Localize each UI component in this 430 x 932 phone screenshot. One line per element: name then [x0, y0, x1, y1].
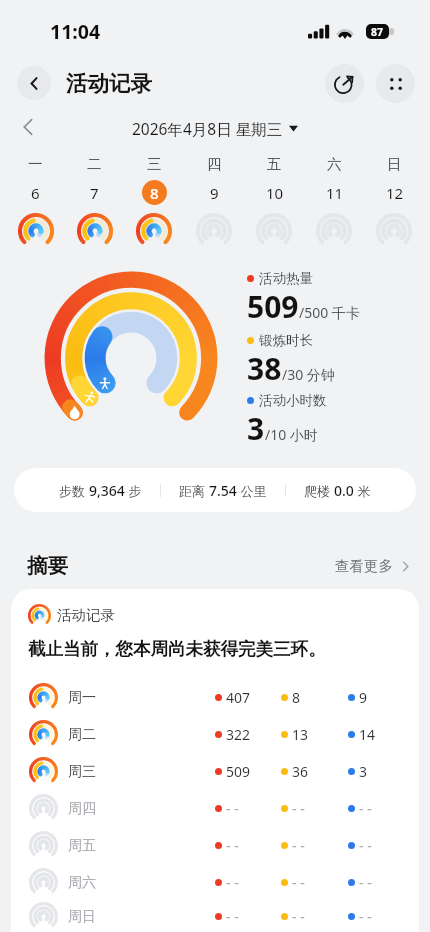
staticText: 公里	[237, 482, 267, 500]
button[interactable]: 周日	[11, 901, 419, 932]
staticText: 9,364	[89, 481, 125, 500]
button[interactable]: Share	[325, 64, 364, 103]
staticText: 锻炼时长	[259, 332, 313, 349]
staticText: 活动记录	[66, 70, 152, 97]
staticText: 407	[226, 688, 251, 707]
staticText: - -	[292, 873, 305, 892]
staticText: 周五	[68, 837, 96, 855]
staticText: 周一	[68, 689, 96, 707]
staticText: 活动记录	[57, 606, 115, 624]
button[interactable]: 一	[6, 155, 65, 249]
button[interactable]: 查看更多	[335, 557, 412, 575]
staticText: 截止当前，您本周尚未获得完美三环。	[28, 638, 326, 660]
button[interactable]: More options	[376, 64, 415, 103]
staticText: 0.0	[334, 481, 354, 500]
staticText: 周四	[68, 800, 96, 818]
button[interactable]: 周四	[11, 790, 419, 827]
staticText: 二	[87, 155, 102, 173]
staticText: - -	[292, 836, 305, 855]
staticText: 活动小时数	[259, 392, 327, 409]
button[interactable]: 三	[124, 155, 184, 249]
staticText: - -	[292, 799, 305, 818]
staticText: 周日	[68, 908, 96, 926]
staticText: 摘要	[27, 553, 68, 578]
staticText: /500 千卡	[299, 303, 360, 322]
staticText: 11	[326, 183, 344, 203]
button[interactable]: 2026年4月8日 星期三	[132, 118, 298, 139]
button[interactable]: 四	[184, 155, 244, 249]
staticText: 322	[226, 725, 251, 744]
button[interactable]: 周三	[11, 753, 419, 790]
staticText: 六	[327, 155, 342, 173]
staticText: 11:04	[50, 18, 101, 45]
staticText: 查看更多	[335, 557, 393, 575]
button[interactable]: Previous week	[14, 113, 42, 141]
staticText: 周三	[68, 763, 96, 781]
button[interactable]: 步数	[14, 468, 416, 512]
staticText: 8	[150, 183, 159, 203]
staticText: 7	[90, 183, 99, 203]
button[interactable]: 六	[304, 155, 364, 249]
staticText: - -	[359, 799, 372, 818]
staticText: 12	[386, 183, 404, 203]
staticText: 6	[31, 183, 40, 203]
staticText: 36	[292, 762, 309, 781]
staticText: - -	[226, 836, 239, 855]
staticText: /10 小时	[265, 425, 318, 444]
staticText: 10	[266, 183, 284, 203]
button[interactable]: 周五	[11, 827, 419, 864]
staticText: 2026年4月8日 星期三	[132, 118, 283, 139]
staticText: - -	[359, 907, 372, 926]
staticText: 38	[247, 348, 282, 389]
button[interactable]: Back	[17, 66, 51, 100]
staticText: 509	[247, 286, 299, 327]
staticText: 9	[210, 183, 219, 203]
button[interactable]: 周一	[11, 679, 419, 716]
staticText: 爬楼	[304, 482, 334, 500]
staticText: 步数	[59, 482, 89, 500]
staticText: 日	[387, 155, 402, 173]
staticText: 7.54	[209, 481, 237, 500]
button[interactable]: 二	[65, 155, 124, 249]
staticText: 509	[226, 762, 251, 781]
button[interactable]: 日	[364, 155, 424, 249]
staticText: - -	[292, 907, 305, 926]
staticText: 13	[292, 725, 309, 744]
staticText: 三	[147, 155, 162, 173]
staticText: 距离	[179, 482, 209, 500]
staticText: 8	[292, 688, 301, 707]
staticText: 活动热量	[259, 270, 313, 287]
staticText: 3	[247, 408, 265, 449]
button[interactable]: 周六	[11, 864, 419, 901]
staticText: 周二	[68, 726, 96, 744]
staticText: - -	[226, 907, 239, 926]
staticText: - -	[226, 799, 239, 818]
staticText: /30 分钟	[282, 365, 335, 384]
button[interactable]: 五	[244, 155, 304, 249]
staticText: 3	[359, 762, 368, 781]
staticText: 步	[125, 482, 142, 500]
staticText: 周六	[68, 874, 96, 892]
staticText: 米	[354, 482, 371, 500]
staticText: 五	[267, 155, 282, 173]
staticText: 四	[207, 155, 222, 173]
staticText: 9	[359, 688, 368, 707]
staticText: 一	[28, 155, 43, 173]
staticText: - -	[359, 873, 372, 892]
staticText: - -	[226, 873, 239, 892]
staticText: 14	[359, 725, 376, 744]
button[interactable]: 周二	[11, 716, 419, 753]
staticText: 87	[371, 25, 384, 39]
staticText: - -	[359, 836, 372, 855]
